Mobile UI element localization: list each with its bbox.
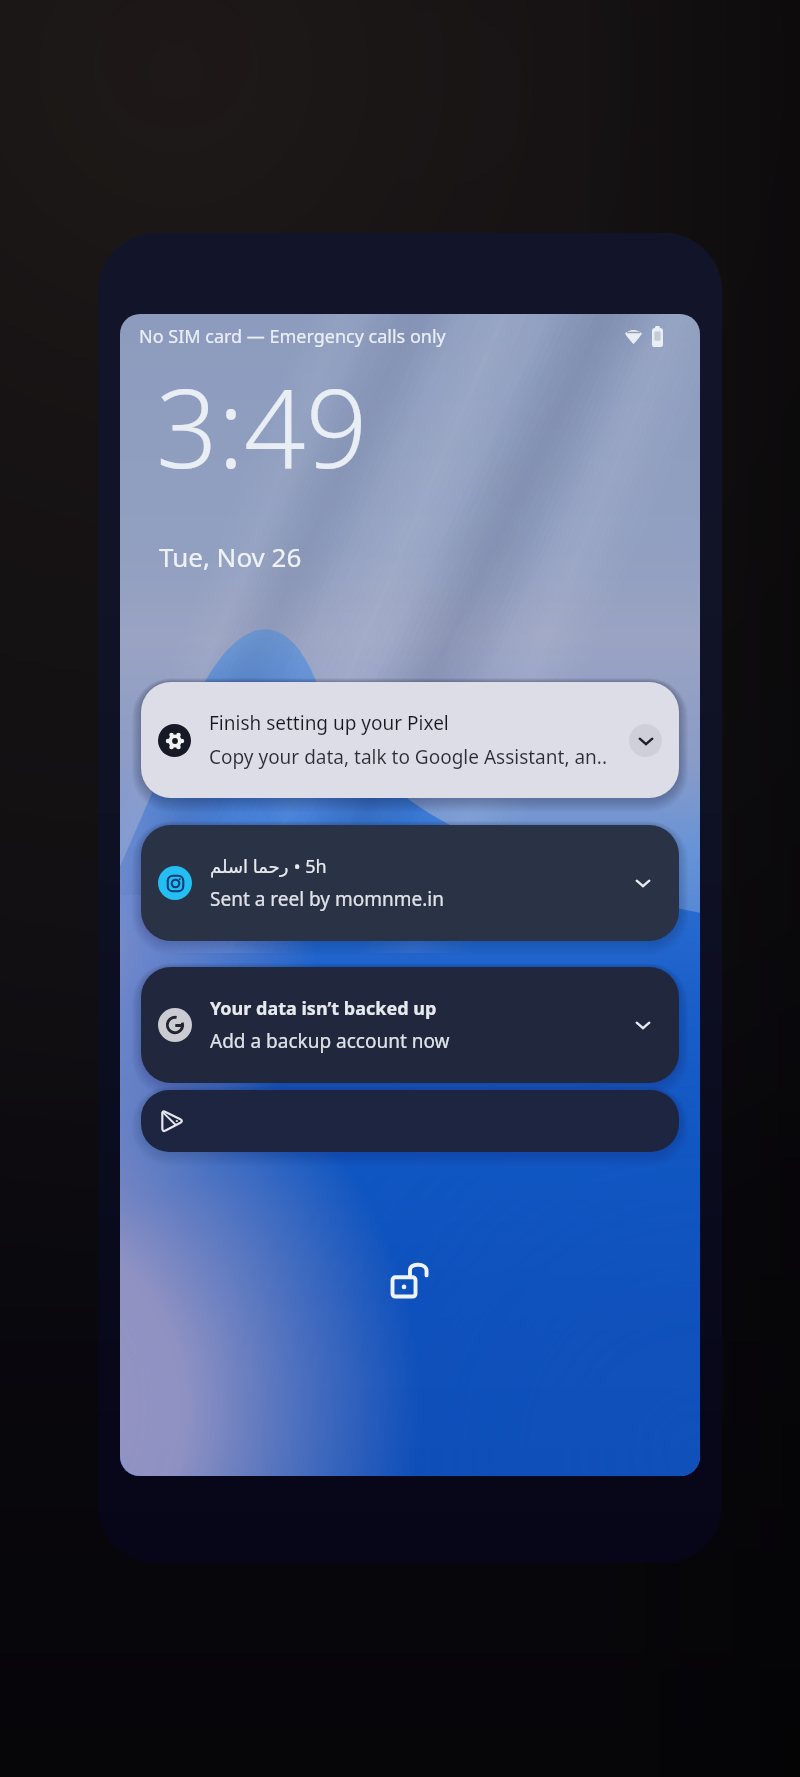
staticText: 3:49: [156, 353, 368, 500]
other: Battery: [652, 326, 663, 347]
button[interactable]: Instagram: [141, 825, 679, 941]
staticText: Tue, Nov 26: [159, 539, 302, 574]
other: Expand notification: [637, 732, 655, 750]
button[interactable]: Play Store: [141, 1090, 679, 1152]
staticText: رحما اسلم: [210, 854, 289, 879]
other: Instagram: [166, 874, 185, 893]
staticText: Sent a reel by momnme.in: [210, 886, 444, 912]
staticText: Add a backup account now: [210, 1028, 450, 1054]
staticText: Finish setting up your Pixel: [209, 710, 449, 736]
staticText: Copy your data, talk to Google Assistant…: [209, 744, 607, 770]
other: Google: [164, 1014, 186, 1036]
other: Wi-Fi: [625, 327, 642, 345]
other: Unlock: [387, 1257, 433, 1303]
other: Expand notification: [634, 1016, 652, 1034]
other: Settings: [165, 731, 185, 751]
other: Expand notification: [634, 874, 652, 892]
staticText: • 5h: [289, 854, 327, 879]
staticText: Your data isn’t backed up: [210, 996, 437, 1021]
other: Play Store: [161, 1110, 183, 1132]
button[interactable]: Settings: [141, 682, 679, 798]
button[interactable]: Google: [141, 967, 679, 1083]
staticText: No SIM card — Emergency calls only: [139, 324, 446, 349]
